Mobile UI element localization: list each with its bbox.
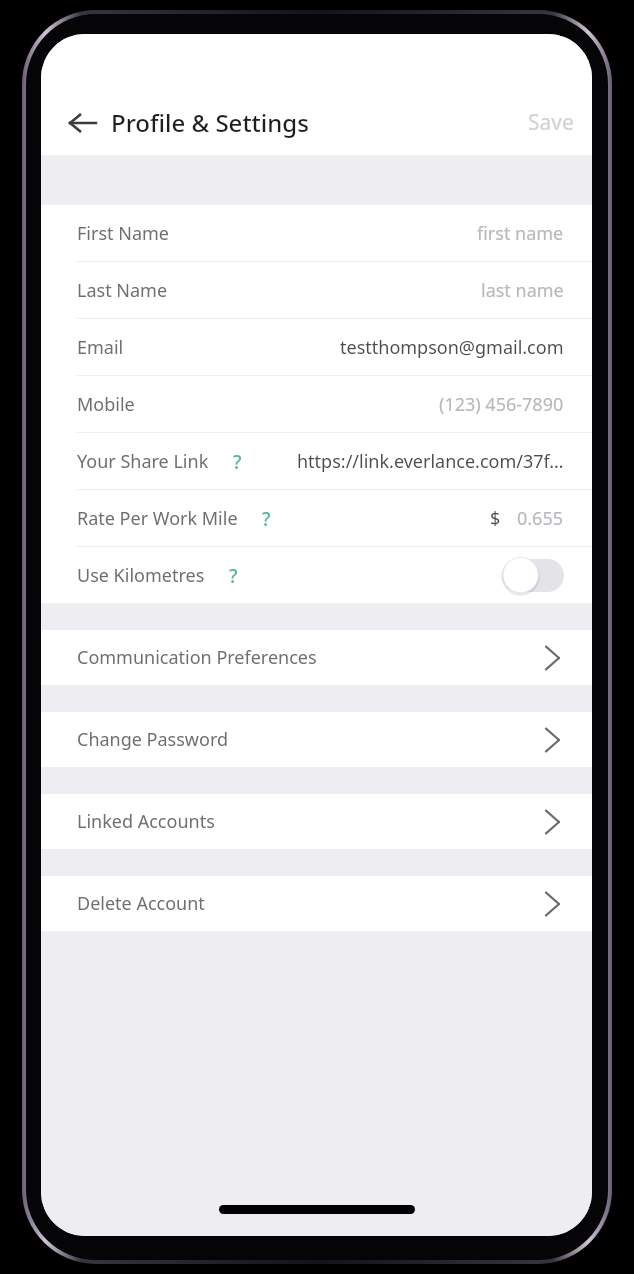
staticText: Delete Account	[77, 891, 205, 916]
staticText: ?	[229, 563, 238, 587]
staticText: Last Name	[77, 278, 168, 303]
staticText: Rate Per Work Mile	[77, 506, 238, 531]
staticText: Communication Preferences	[77, 645, 317, 670]
staticText: (123) 456-7890	[439, 392, 564, 417]
staticText: https://link.everlance.com/37f…	[297, 449, 564, 474]
staticText: Use Kilometres	[77, 563, 205, 588]
button[interactable]: Email	[41, 319, 592, 375]
staticText: Save	[528, 108, 574, 137]
staticText: Mobile	[77, 392, 135, 417]
button[interactable]: Use Kilometres toggle	[502, 557, 564, 593]
staticText: Profile & Settings	[111, 106, 309, 139]
button[interactable]: Last Name	[41, 262, 592, 318]
button[interactable]: Save	[510, 98, 592, 147]
staticText: Your Share Link	[77, 449, 209, 474]
button[interactable]: Linked Accounts	[41, 794, 592, 849]
staticText: $	[490, 506, 501, 531]
staticText: testthompson@gmail.com	[340, 335, 564, 360]
staticText: First Name	[77, 221, 169, 246]
staticText: ?	[262, 506, 271, 530]
button[interactable]: First Name	[41, 205, 592, 261]
staticText: Email	[77, 335, 124, 360]
button[interactable]: Your Share Link	[41, 433, 592, 489]
button[interactable]: Change Password	[41, 712, 592, 767]
staticText: Linked Accounts	[77, 809, 215, 834]
staticText: last name	[481, 278, 564, 303]
button[interactable]: Help	[225, 449, 249, 473]
button[interactable]: Mobile	[41, 376, 592, 432]
staticText: ?	[233, 449, 242, 473]
button[interactable]: Help	[221, 563, 245, 587]
button[interactable]: Help	[254, 506, 278, 530]
staticText: 0.655	[517, 506, 564, 531]
button[interactable]: Use Kilometres	[41, 547, 592, 603]
staticText: first name	[477, 221, 564, 246]
button[interactable]: Delete Account	[41, 876, 592, 931]
button[interactable]: Rate Per Work Mile	[41, 490, 592, 546]
staticText: Change Password	[77, 727, 229, 752]
button[interactable]: Communication Preferences	[41, 630, 592, 685]
button[interactable]: Back	[59, 99, 107, 147]
